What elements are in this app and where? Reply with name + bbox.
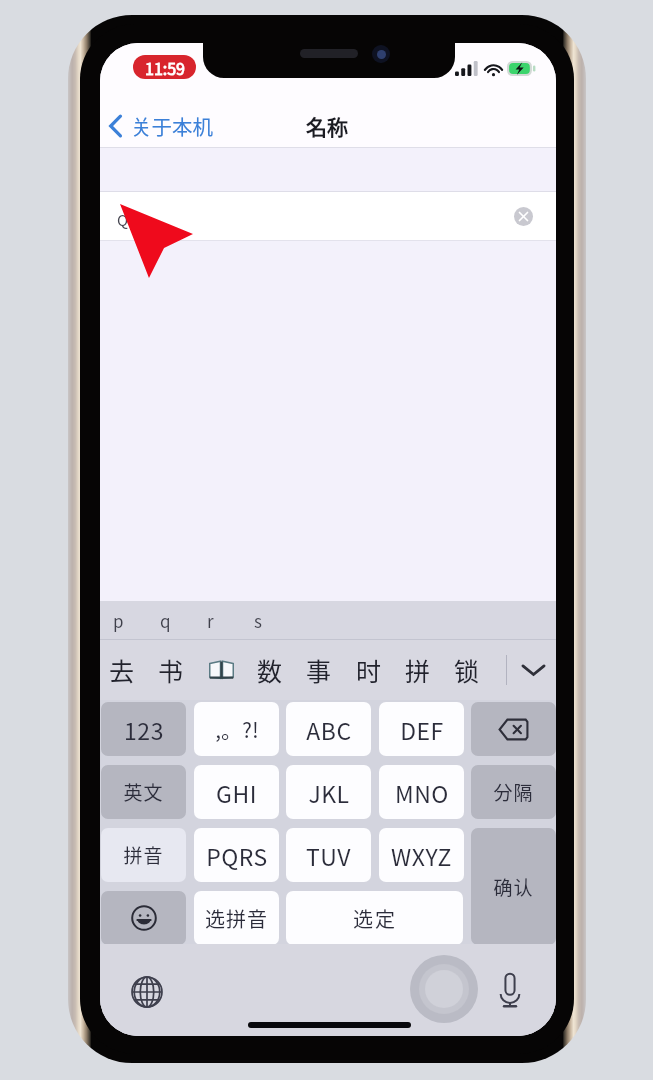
staticText: ABC (306, 713, 352, 746)
button[interactable]: 分隔 (471, 765, 556, 819)
button[interactable]: 时 (345, 640, 393, 700)
staticText: JKL (308, 776, 350, 809)
staticText: 分隔 (493, 778, 534, 806)
button[interactable]: Change keyboard (129, 974, 165, 1010)
button[interactable]: s (254, 601, 301, 640)
button[interactable]: Dictation (492, 972, 528, 1008)
staticText: 123 (124, 713, 164, 746)
button[interactable]: 书 (147, 640, 195, 700)
button[interactable]: 拼音 (101, 828, 186, 882)
staticText: WXYZ (391, 839, 452, 872)
button[interactable]: 拼 (394, 640, 442, 700)
button[interactable]: Emoji (101, 891, 186, 945)
staticText: 选定 (353, 904, 397, 933)
button[interactable]: 选定 (286, 891, 463, 945)
button[interactable]: ABC (286, 702, 371, 756)
staticText: s (254, 608, 262, 633)
staticText: 数 (257, 652, 283, 688)
button[interactable]: TUV (286, 828, 371, 882)
button[interactable]: ,。?! (194, 702, 279, 756)
staticText: p (113, 608, 124, 633)
staticText: r (207, 608, 214, 633)
staticText: 拼音 (123, 841, 164, 869)
button[interactable]: 11:59 (133, 55, 196, 79)
button[interactable]: PQRS (194, 828, 279, 882)
staticText: MNO (395, 776, 449, 809)
staticText: GHI (216, 776, 257, 809)
button[interactable]: 锁 (443, 640, 491, 700)
staticText: DEF (400, 713, 444, 746)
staticText: 去 (109, 652, 135, 688)
button[interactable]: Q (100, 192, 556, 240)
button[interactable]: AssistiveTouch (410, 955, 478, 1023)
staticText: 11:59 (145, 56, 185, 79)
button[interactable]: Hide keyboard (515, 640, 551, 700)
button[interactable]: JKL (286, 765, 371, 819)
button[interactable]: GHI (194, 765, 279, 819)
staticText: 确认 (493, 873, 534, 901)
button[interactable]: q (160, 601, 207, 640)
button[interactable]: r (207, 601, 254, 640)
button[interactable]: 123 (101, 702, 186, 756)
staticText: 关于本机 (131, 111, 213, 141)
button[interactable]: 事 (295, 640, 343, 700)
staticText: 拼 (405, 652, 431, 688)
staticText: 书 (158, 652, 184, 688)
button[interactable]: MNO (379, 765, 464, 819)
button[interactable]: 英文 (101, 765, 186, 819)
button[interactable]: Delete (471, 702, 556, 756)
button[interactable]: WXYZ (379, 828, 464, 882)
staticText: 锁 (454, 652, 480, 688)
button[interactable]: 去 (100, 640, 146, 700)
staticText: 时 (356, 652, 382, 688)
staticText: 事 (306, 652, 332, 688)
staticText: ,。?! (215, 714, 259, 744)
staticText: TUV (306, 839, 351, 872)
staticText: 英文 (123, 778, 164, 806)
staticText: 选拼音 (205, 904, 268, 933)
staticText: Q (117, 209, 129, 231)
button[interactable]: 关于本机 (100, 107, 223, 145)
staticText: 名称 (306, 111, 348, 141)
staticText: q (160, 608, 171, 633)
staticText: PQRS (206, 839, 268, 872)
button[interactable]: p (113, 601, 160, 640)
button[interactable]: 数 (246, 640, 294, 700)
button[interactable]: 选拼音 (194, 891, 279, 945)
button[interactable]: Clear text (510, 203, 536, 229)
button[interactable]: DEF (379, 702, 464, 756)
button[interactable]: 确认 (471, 828, 556, 945)
button[interactable] (197, 640, 245, 700)
